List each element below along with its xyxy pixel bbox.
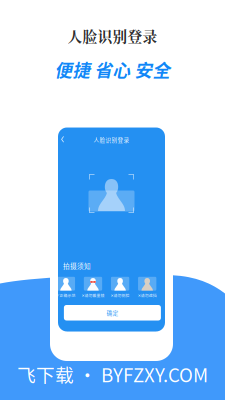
- button[interactable]: 确定: [64, 305, 161, 320]
- button[interactable]: ✕请勿戴墨镜: [87, 274, 105, 294]
- button[interactable]: ✕请勿侧脸: [114, 274, 132, 294]
- staticText: ✕请勿戴墨镜: [81, 293, 104, 298]
- staticText: 确定: [106, 309, 118, 317]
- staticText: ✕请勿侧脸: [111, 293, 130, 298]
- staticText: ✕请勿遮挡: [138, 293, 157, 298]
- staticText: 人脸识别登录: [93, 136, 129, 144]
- staticText: 拍摄须知: [63, 261, 91, 271]
- button[interactable]: Back: [58, 133, 67, 146]
- staticText: ✓正确示范: [56, 293, 75, 298]
- staticText: 人脸识别登录: [67, 25, 157, 47]
- button[interactable]: ✓正确示范: [60, 274, 78, 294]
- button[interactable]: ✕请勿遮挡: [141, 274, 159, 294]
- staticText: 飞下载 • BYFZXY.COM: [17, 360, 208, 387]
- staticText: 便捷 省心 安全: [54, 56, 170, 82]
